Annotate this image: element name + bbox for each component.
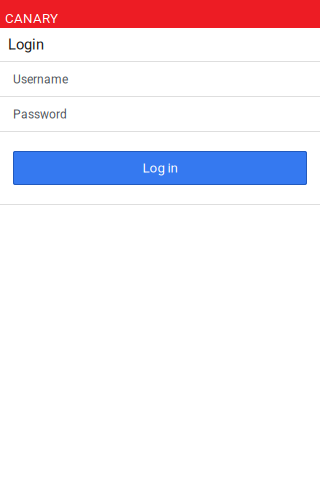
staticText: CANARY [5,11,58,26]
button[interactable]: Password [0,97,320,131]
staticText: Username [13,72,68,87]
button[interactable]: Username [0,62,320,96]
button[interactable]: Log in [13,151,307,185]
staticText: Password [13,107,67,122]
staticText: Login [8,36,44,53]
staticText: Log in [142,160,177,176]
